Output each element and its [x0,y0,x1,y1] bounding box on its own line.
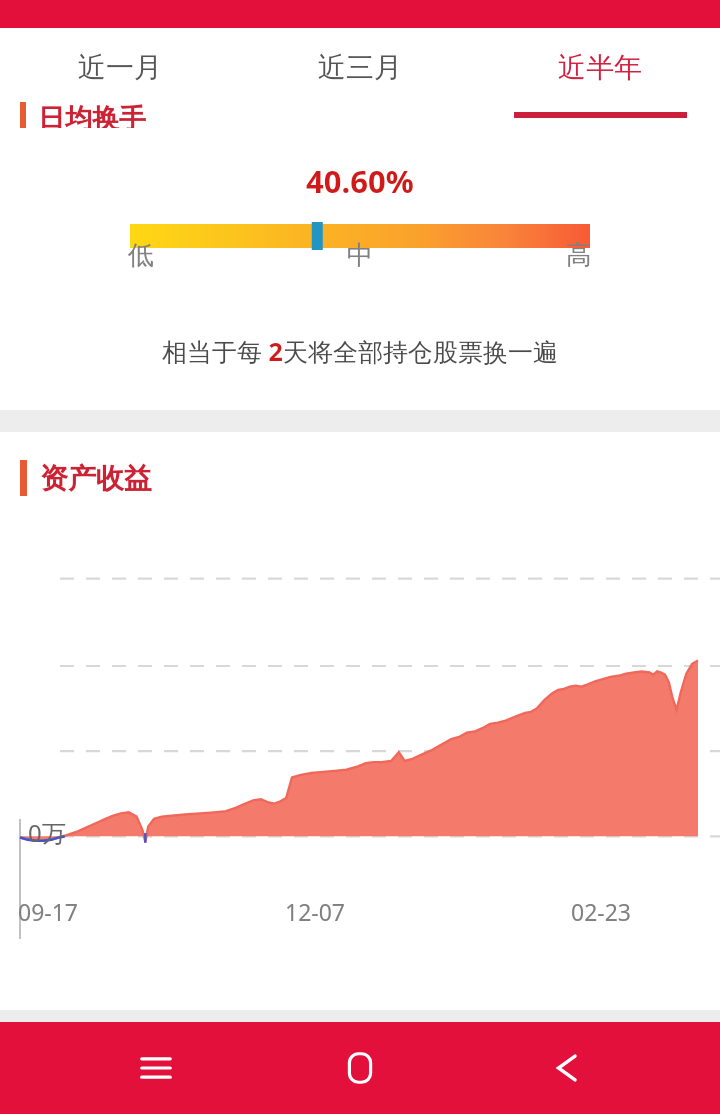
staticText: 相当于每 2天将全部持仓股票换一遍 [162,334,558,368]
staticText: 40.60% [306,160,414,202]
button[interactable]: Home [312,1022,408,1114]
staticText: 中 [347,239,373,272]
staticText: 低 [128,239,154,272]
staticText: 日均换手 [38,102,146,128]
button[interactable]: Back [516,1022,612,1114]
button[interactable]: 近三月 [240,28,480,120]
staticText: 12-07 [285,896,346,927]
staticText: 高 [566,239,592,272]
button[interactable]: 近一月 [0,28,240,120]
button[interactable]: Menu [108,1022,204,1114]
button[interactable]: 近半年 [480,28,720,120]
staticText: 近一月 [78,50,162,85]
staticText: 02-23 [571,896,632,927]
staticText: 09-17 [18,896,79,927]
staticText: 0万 [28,816,66,849]
staticText: 近半年 [558,50,642,85]
staticText: 近三月 [318,50,402,85]
staticText: 资产收益 [40,461,152,496]
